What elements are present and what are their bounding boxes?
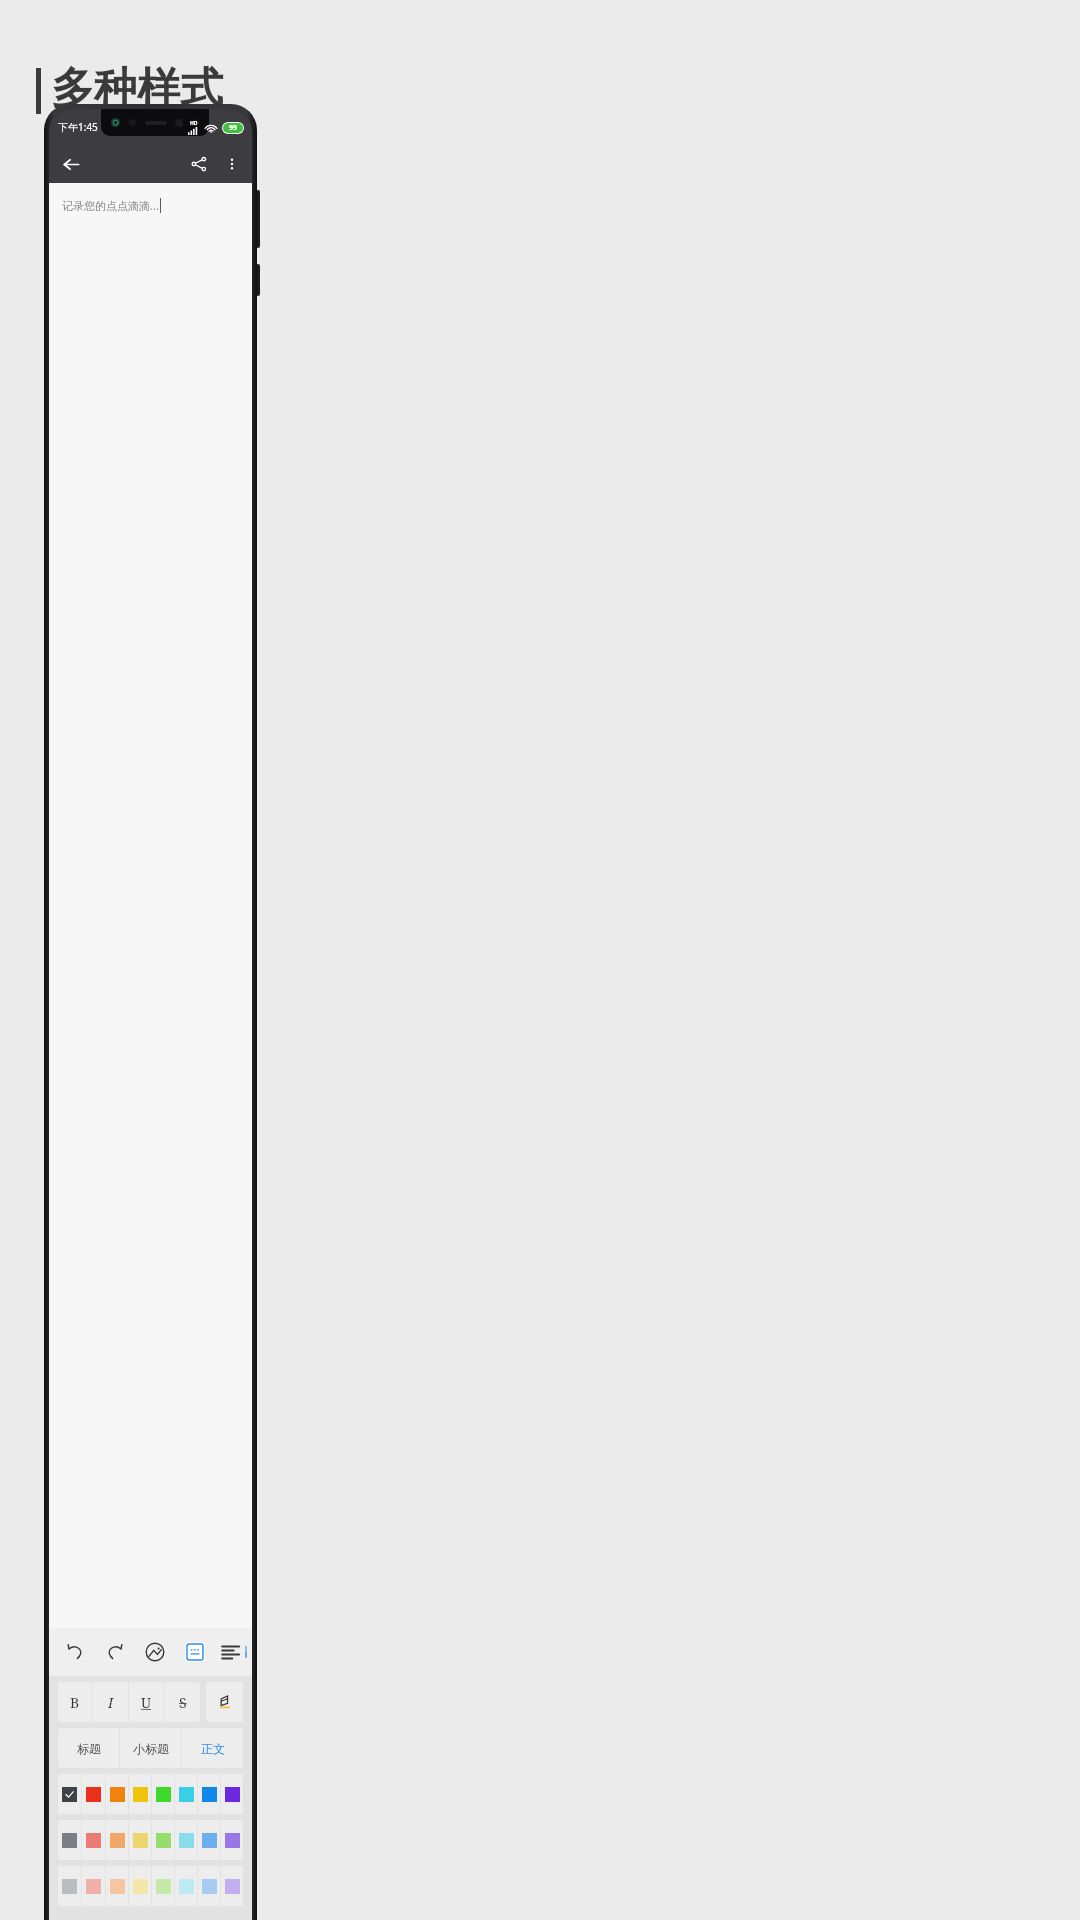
button[interactable]: Color 1 xyxy=(82,1774,105,1814)
button[interactable]: Insert image xyxy=(135,1632,175,1672)
staticText: 记录您的点点滴滴... xyxy=(62,198,159,213)
button[interactable]: Color 2 xyxy=(106,1820,128,1860)
button[interactable]: Color 5 xyxy=(175,1774,197,1814)
button[interactable]: Highlighter xyxy=(206,1682,243,1722)
button[interactable]: Color 4 xyxy=(152,1866,174,1906)
staticText: 正文 xyxy=(201,1741,225,1756)
button[interactable]: Color 3 xyxy=(129,1774,151,1814)
button[interactable]: Alignment xyxy=(215,1632,246,1672)
button[interactable]: Undo xyxy=(55,1632,95,1672)
button[interactable]: Color 0 xyxy=(58,1820,81,1860)
button[interactable]: Back xyxy=(54,147,88,181)
button[interactable]: S xyxy=(165,1682,200,1722)
button[interactable]: Text style xyxy=(175,1632,215,1672)
button[interactable]: I xyxy=(93,1682,128,1722)
button[interactable]: Color 6 xyxy=(198,1774,220,1814)
button[interactable]: Color 1 xyxy=(82,1866,105,1906)
button[interactable]: Color 3 xyxy=(129,1820,151,1860)
staticText: 标题 xyxy=(77,1741,101,1756)
button[interactable]: Redo xyxy=(95,1632,135,1672)
staticText: U xyxy=(141,1693,152,1712)
button[interactable]: 正文 xyxy=(182,1728,243,1768)
button[interactable]: Color 4 xyxy=(152,1774,174,1814)
button[interactable]: Color 7 xyxy=(221,1774,243,1814)
button[interactable]: Color 3 xyxy=(129,1866,151,1906)
button[interactable]: Color 1 xyxy=(82,1820,105,1860)
staticText: HD xyxy=(190,120,198,127)
button[interactable]: More options xyxy=(216,148,248,180)
button[interactable]: Color 2 xyxy=(106,1774,128,1814)
button[interactable]: Color 5 xyxy=(175,1820,197,1860)
button[interactable]: Color 4 xyxy=(152,1820,174,1860)
button[interactable]: Color 0 xyxy=(58,1866,81,1906)
staticText: I xyxy=(108,1693,114,1712)
button[interactable]: Color 7 xyxy=(221,1866,243,1906)
staticText: 99 xyxy=(229,123,238,133)
staticText: 缤纷生活 xyxy=(45,136,177,178)
button[interactable]: Share xyxy=(182,147,216,181)
button[interactable]: 标题 xyxy=(58,1728,119,1768)
button[interactable]: Color 6 xyxy=(198,1820,220,1860)
button[interactable]: Color 6 xyxy=(198,1866,220,1906)
button[interactable]: Color 2 xyxy=(106,1866,128,1906)
button[interactable]: 小标题 xyxy=(120,1728,181,1768)
button[interactable]: B xyxy=(58,1682,92,1722)
staticText: 下午1:45 xyxy=(58,120,98,134)
staticText: B xyxy=(70,1693,80,1712)
button[interactable]: Color 0 xyxy=(58,1774,81,1814)
staticText: 小标题 xyxy=(133,1741,169,1756)
staticText: 多种样式 xyxy=(51,62,223,116)
button[interactable]: U xyxy=(129,1682,164,1722)
button[interactable]: Color 7 xyxy=(221,1820,243,1860)
button[interactable]: Color 5 xyxy=(175,1866,197,1906)
staticText: S xyxy=(179,1693,187,1712)
